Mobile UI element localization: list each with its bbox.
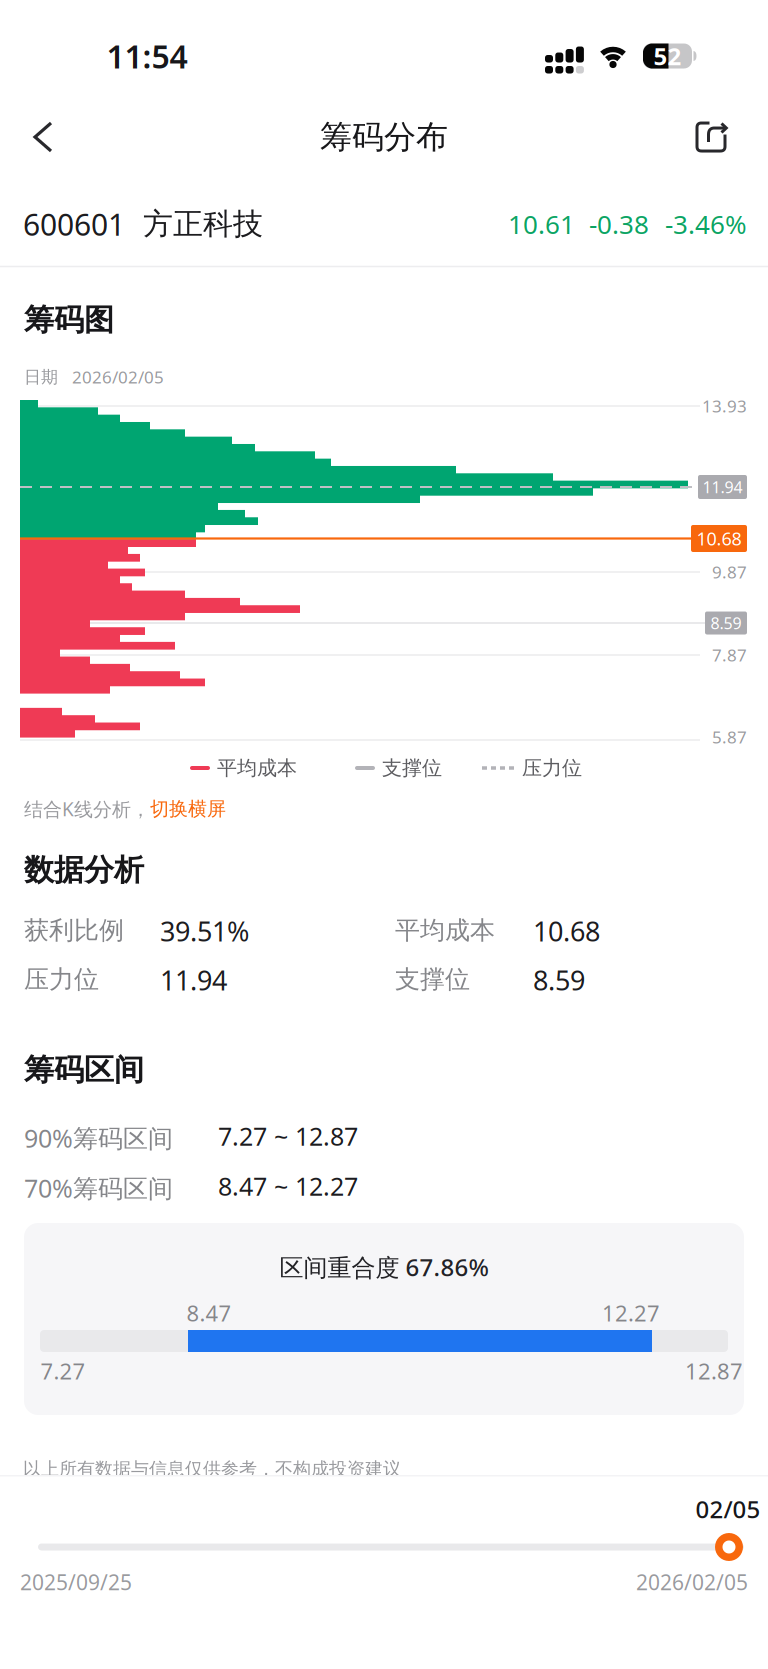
staticText: -3.46%: [665, 207, 747, 241]
staticText: 11.94: [702, 476, 742, 498]
staticText: 10.68: [696, 526, 741, 550]
staticText: 支撑位: [382, 756, 442, 780]
staticText: 支撑位: [395, 964, 470, 995]
staticText: 13.93: [702, 395, 747, 417]
staticText: 以上所有数据与信息仅供参考，不构成投资建议: [23, 1458, 401, 1480]
staticText: 筹码分布: [320, 117, 448, 157]
staticText: 区间重合度 67.86%: [279, 1251, 488, 1283]
staticText: 2026/02/05: [636, 1568, 748, 1596]
staticText: 12.27: [602, 1298, 660, 1328]
staticText: 7.87: [712, 644, 747, 666]
staticText: 获利比例: [24, 915, 124, 946]
staticText: 压力位: [24, 964, 99, 995]
staticText: 11.94: [160, 962, 227, 998]
staticText: 39.51%: [160, 913, 249, 949]
staticText: 02/05: [695, 1493, 760, 1525]
staticText: 筹码图: [24, 302, 114, 338]
staticText: 日期: [24, 367, 58, 387]
staticText: 9.87: [712, 561, 747, 583]
staticText: 600601: [23, 204, 125, 244]
staticText: 方正科技: [143, 206, 263, 242]
staticText: 12.87: [685, 1356, 743, 1386]
staticText: -0.38: [589, 207, 649, 241]
staticText: 8.59: [710, 612, 741, 634]
button[interactable]: Back: [21, 109, 67, 165]
staticText: 平均成本: [395, 915, 495, 946]
staticText: 10.61: [508, 207, 575, 241]
button[interactable]: Date slider: [715, 1533, 743, 1561]
staticText: 2026/02/05: [72, 366, 164, 388]
staticText: 7.27 ~ 12.87: [218, 1119, 358, 1153]
staticText: 2025/09/25: [20, 1568, 132, 1596]
staticText: 70%筹码区间: [24, 1171, 173, 1205]
button[interactable]: 切换横屏: [150, 797, 226, 821]
staticText: 数据分析: [24, 852, 144, 888]
staticText: 8.47: [186, 1298, 231, 1328]
staticText: 结合K线分析，: [24, 796, 150, 822]
staticText: 5.87: [712, 726, 747, 748]
staticText: 90%筹码区间: [24, 1121, 173, 1155]
staticText: 压力位: [522, 756, 582, 780]
staticText: 平均成本: [217, 756, 297, 780]
staticText: 8.47 ~ 12.27: [218, 1169, 358, 1203]
staticText: 10.68: [533, 913, 600, 949]
staticText: 7.27: [40, 1356, 85, 1386]
staticText: 筹码区间: [24, 1052, 144, 1088]
button[interactable]: Share: [685, 111, 738, 162]
staticText: 8.59: [533, 962, 585, 998]
staticText: 52: [653, 40, 681, 72]
staticText: 11:54: [106, 35, 187, 77]
staticText: 切换横屏: [150, 797, 226, 821]
